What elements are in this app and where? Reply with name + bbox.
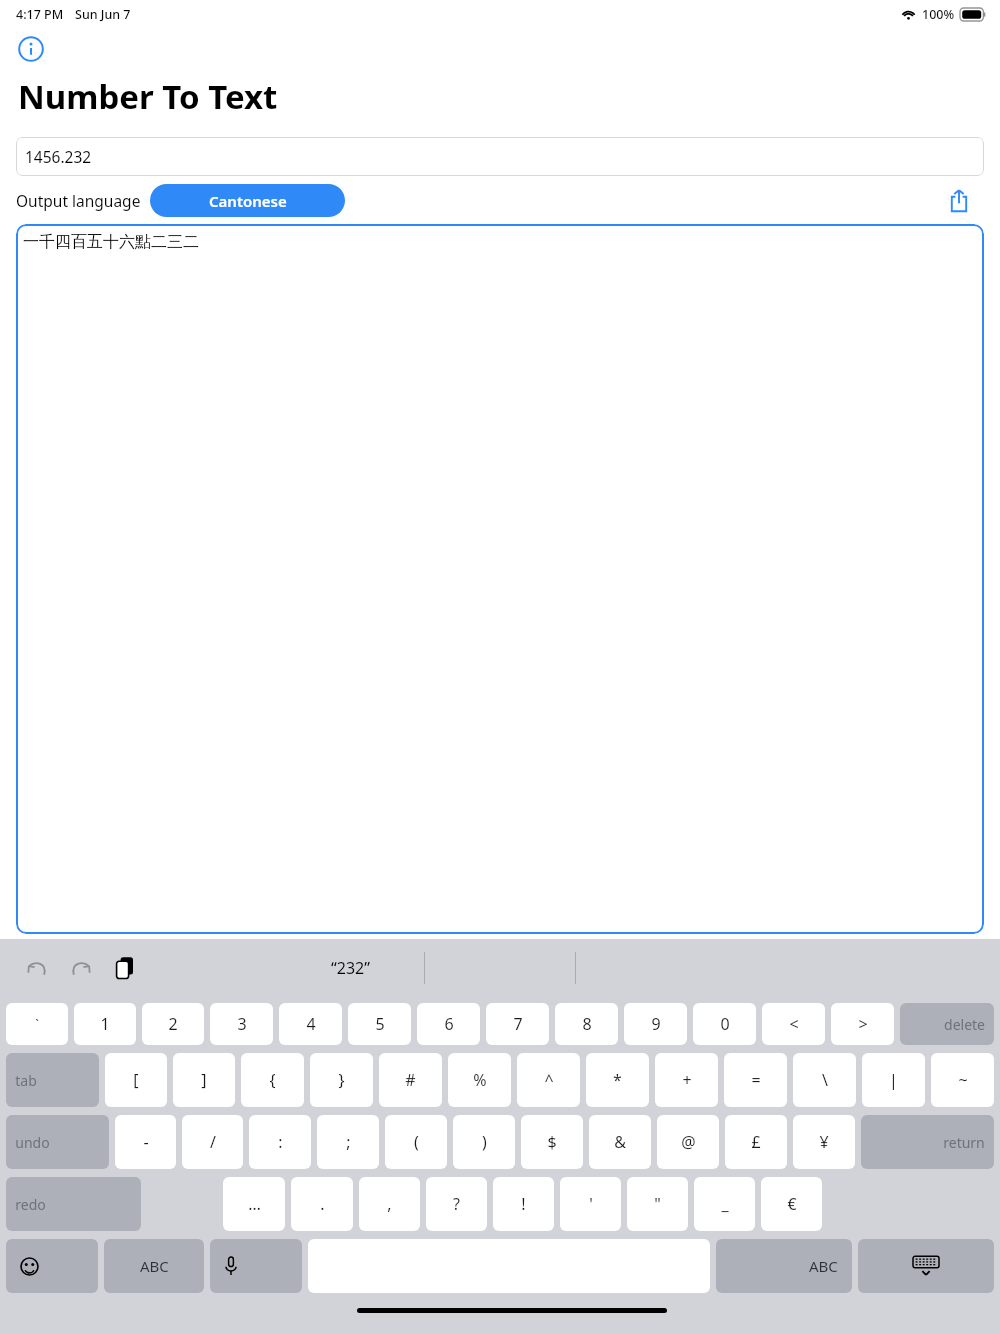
staticText: [ [133,1069,139,1091]
button[interactable]: ; [317,1115,379,1169]
button[interactable]: 1456.232 [16,137,984,176]
button[interactable]: ~ [931,1053,994,1107]
button[interactable]: 一千四百五十六點二三二 [16,224,984,934]
button[interactable]: " [627,1177,688,1231]
button[interactable]: { [241,1053,304,1107]
button[interactable]: 6 [417,1003,480,1045]
staticText: _ [721,1193,729,1215]
button[interactable]: Redo [64,951,98,985]
button[interactable]: - [115,1115,176,1169]
staticText: ~ [958,1069,968,1091]
staticText: ; [346,1131,351,1153]
button[interactable]: & [589,1115,651,1169]
button[interactable]: \ [793,1053,856,1107]
staticText: & [614,1131,626,1153]
staticText: % [473,1069,487,1091]
button[interactable]: 1 [74,1003,136,1045]
staticText: , [387,1193,392,1215]
button[interactable]: } [310,1053,373,1107]
staticText: < [789,1013,799,1035]
button[interactable]: Information [16,34,46,64]
staticText: ( [414,1131,419,1153]
button[interactable]: ! [493,1177,554,1231]
button[interactable]: ` [6,1003,68,1045]
button[interactable]: . [291,1177,353,1231]
button[interactable]: Share [944,185,974,215]
staticText: Number To Text [18,74,278,119]
button[interactable]: , [359,1177,420,1231]
staticText: 一千四百五十六點二三二 [23,232,199,252]
staticText: € [787,1193,797,1215]
button[interactable]: @ [657,1115,719,1169]
button[interactable]: ( [385,1115,447,1169]
staticText: £ [751,1131,761,1153]
button[interactable]: $ [521,1115,583,1169]
staticText: 7 [513,1013,523,1035]
button[interactable]: : [249,1115,311,1169]
button[interactable]: < [762,1003,825,1045]
staticText: : [278,1131,283,1153]
staticText: ! [521,1193,526,1215]
staticText: { [269,1069,276,1091]
button[interactable]: … [223,1177,285,1231]
staticText: Sun Jun 7 [75,6,131,23]
button[interactable]: 2 [142,1003,204,1045]
button[interactable]: ? [426,1177,487,1231]
button[interactable]: 5 [348,1003,411,1045]
button[interactable]: ) [453,1115,515,1169]
staticText: 4:17 PM [16,6,64,23]
button[interactable]: # [379,1053,442,1107]
staticText: ¥ [819,1131,829,1153]
staticText: 1 [100,1013,110,1035]
staticText: … [248,1193,261,1215]
button[interactable]: Hide keyboard [858,1239,994,1293]
button[interactable]: ABC [716,1239,852,1293]
button[interactable]: ABC [104,1239,204,1293]
staticText: > [858,1013,868,1035]
staticText: . [320,1193,325,1215]
button[interactable]: return [861,1115,994,1169]
button[interactable]: > [831,1003,894,1045]
staticText: # [405,1069,416,1091]
button[interactable]: undo [6,1115,109,1169]
staticText: ' [589,1193,593,1215]
button[interactable]: € [761,1177,822,1231]
button[interactable]: ^ [517,1053,580,1107]
staticText: | [889,1069,898,1091]
button[interactable]: | [862,1053,925,1107]
button[interactable]: Paste [108,951,142,985]
staticText: \ [822,1069,828,1091]
button[interactable]: _ [694,1177,755,1231]
button[interactable]: ' [560,1177,621,1231]
button[interactable]: * [586,1053,649,1107]
staticText: ^ [544,1069,554,1091]
button[interactable]: £ [725,1115,787,1169]
button[interactable]: tab [6,1053,99,1107]
button[interactable]: delete [900,1003,994,1045]
button[interactable]: = [724,1053,787,1107]
button[interactable]: 8 [555,1003,618,1045]
button[interactable]: 3 [210,1003,273,1045]
button[interactable]: ¥ [793,1115,855,1169]
staticText: return [943,1133,985,1152]
button[interactable]: 0 [693,1003,756,1045]
button[interactable]: 7 [486,1003,549,1045]
staticText: @ [681,1131,696,1153]
button[interactable]: Emoji [6,1239,98,1293]
button[interactable]: 4 [279,1003,342,1045]
button[interactable]: Cantonese [150,184,345,217]
button[interactable]: % [448,1053,511,1107]
button[interactable]: Dictation [210,1239,302,1293]
button[interactable]: / [182,1115,243,1169]
button[interactable]: Undo [20,951,54,985]
button[interactable]: 9 [624,1003,687,1045]
staticText: 4 [306,1013,316,1035]
button[interactable]: [ [105,1053,167,1107]
staticText: ABC [809,1256,838,1276]
button[interactable]: + [655,1053,718,1107]
staticText: 1456.232 [25,146,92,167]
button[interactable]: ] [173,1053,235,1107]
staticText: 9 [651,1013,661,1035]
button[interactable]: redo [6,1177,141,1231]
